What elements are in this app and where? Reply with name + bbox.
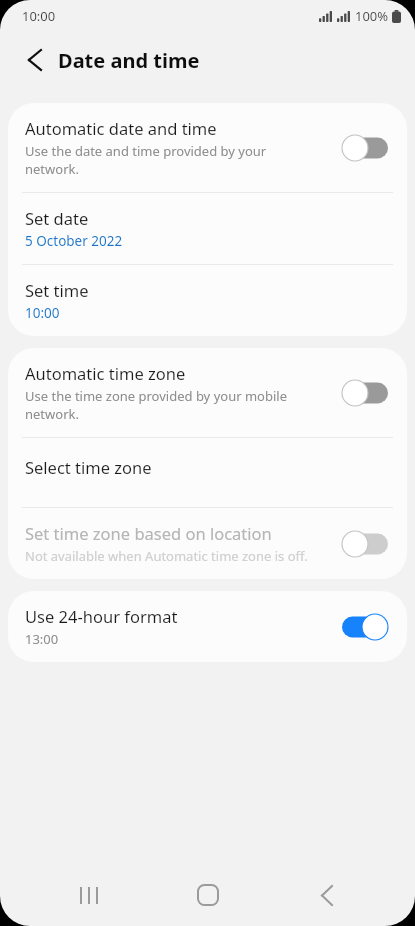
staticText: Set time bbox=[25, 279, 89, 301]
staticText: Use the time zone provided by your mobil… bbox=[25, 387, 287, 423]
button[interactable]: Switch off bbox=[339, 378, 391, 408]
button[interactable]: Back bbox=[296, 865, 356, 925]
staticText: 13:00 bbox=[25, 630, 59, 648]
button[interactable]: Use 24-hour format bbox=[8, 591, 407, 662]
staticText: Use the date and time provided by your n… bbox=[25, 142, 267, 178]
staticText: 100% bbox=[355, 7, 389, 25]
button[interactable]: Switch off bbox=[339, 529, 391, 559]
button[interactable]: Recent apps bbox=[59, 865, 119, 925]
staticText: 10:00 bbox=[25, 304, 60, 322]
staticText: Set date bbox=[25, 207, 89, 229]
button[interactable]: Set time bbox=[8, 265, 407, 336]
staticText: 5 October 2022 bbox=[25, 232, 123, 250]
staticText: Set time zone based on location bbox=[25, 522, 272, 544]
staticText: Use 24-hour format bbox=[25, 605, 178, 627]
staticText: Automatic time zone bbox=[25, 362, 186, 384]
button[interactable]: Set date bbox=[8, 193, 407, 264]
staticText: Automatic date and time bbox=[25, 117, 217, 139]
button[interactable]: Switch on bbox=[339, 612, 391, 642]
button[interactable]: Home bbox=[178, 865, 238, 925]
staticText: Select time zone bbox=[25, 456, 152, 478]
staticText: Not available when Automatic time zone i… bbox=[25, 547, 308, 565]
button[interactable]: Set time zone based on location bbox=[8, 508, 407, 579]
button[interactable]: Automatic date and time bbox=[8, 103, 407, 192]
button[interactable]: Automatic time zone bbox=[8, 348, 407, 437]
button[interactable]: Back bbox=[14, 40, 54, 80]
button[interactable]: Switch off bbox=[339, 133, 391, 163]
staticText: Date and time bbox=[58, 47, 200, 74]
staticText: 10:00 bbox=[22, 7, 56, 25]
button[interactable]: Select time zone bbox=[8, 438, 407, 507]
